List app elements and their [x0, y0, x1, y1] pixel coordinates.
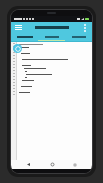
- button[interactable]: Open navigation menu: [14, 23, 23, 32]
- button[interactable]: SOURCE: [11, 33, 38, 40]
- button[interactable]: Recent apps: [68, 160, 82, 169]
- button[interactable]: HTML: [38, 33, 65, 40]
- button[interactable]: Home: [45, 160, 59, 169]
- button[interactable]: Back: [21, 160, 35, 169]
- button[interactable]: Run: [13, 44, 22, 53]
- button[interactable]: OUTPUT: [65, 33, 92, 40]
- button[interactable]: More options: [81, 24, 89, 32]
